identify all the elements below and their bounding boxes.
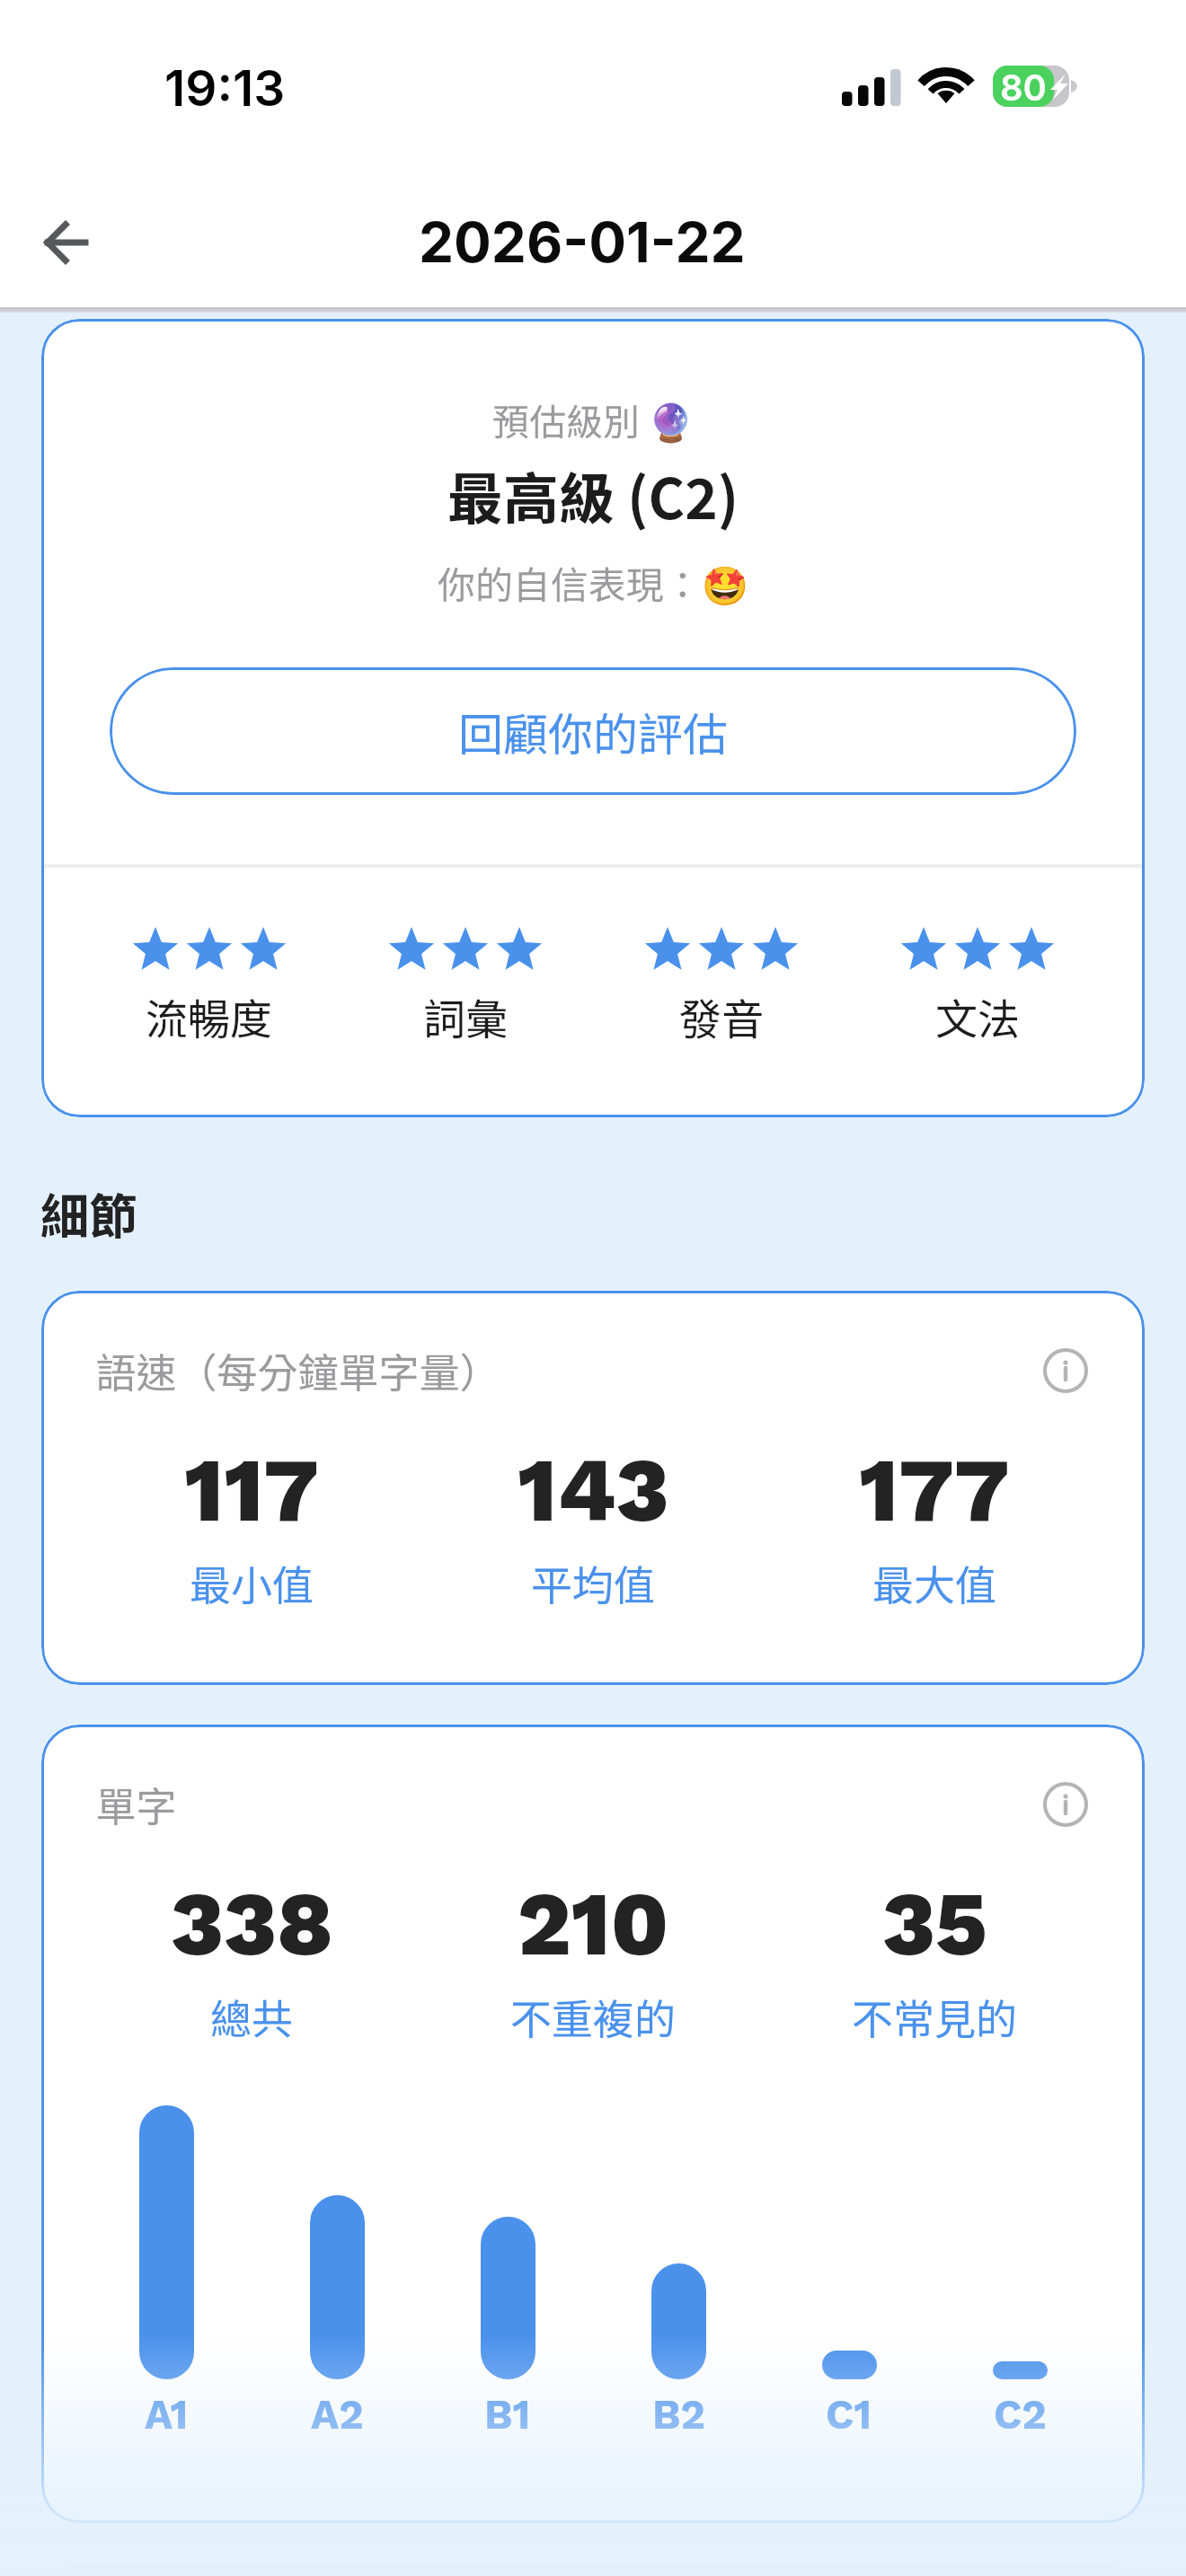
staticText: 117: [184, 1438, 320, 1542]
staticText: 338: [171, 1872, 333, 1976]
staticText: 流暢度: [146, 985, 272, 1046]
staticText: 最高級 (C2): [41, 454, 1145, 535]
staticText: 發音: [679, 985, 764, 1046]
staticText: C1: [826, 2390, 872, 2439]
staticText: 35: [882, 1872, 987, 1976]
staticText: 細節: [40, 1178, 137, 1248]
button[interactable]: 回顧你的評估: [110, 667, 1076, 795]
staticText: 177: [859, 1438, 1010, 1542]
staticText: 最小值: [190, 1553, 314, 1613]
button[interactable]: About 單字: [1041, 1780, 1090, 1829]
staticText: A1: [145, 2390, 189, 2439]
staticText: A2: [311, 2390, 364, 2439]
staticText: 2026-01-22: [419, 208, 746, 276]
staticText: 文法: [935, 985, 1020, 1046]
staticText: 回顧你的評估: [458, 699, 728, 763]
button[interactable]: About 語速（每分鐘單字量）: [1041, 1346, 1090, 1395]
staticText: 不重複的: [510, 1987, 676, 2047]
staticText: 語速（每分鐘單字量）: [95, 1341, 500, 1399]
staticText: 最大值: [872, 1553, 996, 1613]
staticText: 詞彙: [423, 985, 508, 1046]
staticText: 單字: [95, 1775, 177, 1833]
staticText: 不常見的: [852, 1987, 1017, 2047]
button[interactable]: Back: [27, 205, 102, 280]
staticText: B2: [652, 2390, 705, 2439]
staticText: 平均值: [531, 1553, 655, 1613]
staticText: 總共: [210, 1987, 293, 2047]
staticText: 210: [518, 1872, 669, 1976]
staticText: 19:13: [164, 58, 286, 119]
staticText: 80: [1000, 66, 1047, 107]
staticText: 預估級別 🔮: [41, 393, 1145, 446]
staticText: 143: [518, 1438, 669, 1542]
staticText: 你的自信表現：🤩: [41, 555, 1145, 610]
staticText: C2: [994, 2390, 1047, 2439]
staticText: B1: [484, 2390, 531, 2439]
